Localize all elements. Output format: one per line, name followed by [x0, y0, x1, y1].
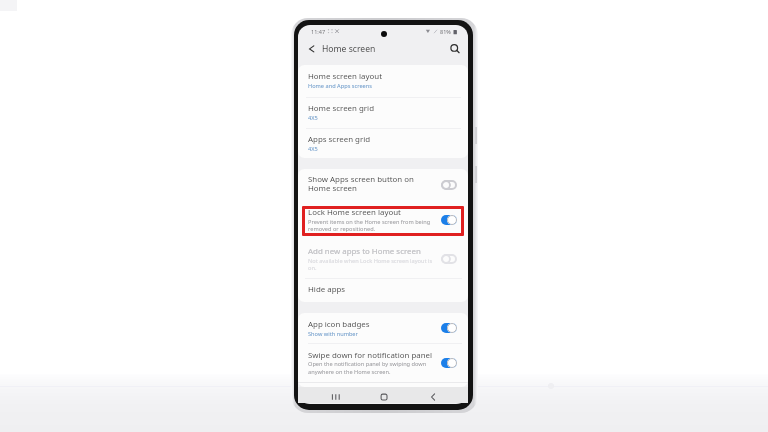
- button[interactable]: Lock Home screen layout: [298, 200, 468, 241]
- staticText: 11:47: [311, 28, 326, 35]
- button[interactable]: Home screen grid: [298, 97, 468, 128]
- staticText: 4X5: [308, 114, 318, 122]
- staticText: Swipe down for notification panel: [308, 350, 433, 361]
- staticText: Lock Home screen layout: [308, 207, 401, 218]
- staticText: Hide apps: [308, 284, 346, 295]
- staticText: Open the notification panel by swiping d…: [308, 360, 427, 375]
- button[interactable]: Navigate up: [305, 42, 319, 56]
- button[interactable]: Home: [376, 389, 392, 405]
- button[interactable]: Show Apps screen button on Home screen: [298, 169, 468, 200]
- staticText: Add new apps to Home screen: [308, 246, 421, 257]
- staticText: Home screen: [322, 43, 376, 55]
- staticText: App icon badges: [308, 319, 370, 330]
- staticText: Apps screen grid: [308, 134, 371, 145]
- staticText: Show with number: [308, 330, 358, 338]
- staticText: 81%: [440, 28, 451, 35]
- button[interactable]: Apps screen grid: [298, 128, 468, 158]
- button[interactable]: Add new apps to Home screen: [298, 241, 468, 278]
- button[interactable]: Swipe down for notification panel: [298, 343, 468, 385]
- button[interactable]: App icon badges: [298, 313, 468, 343]
- button[interactable]: Search: [447, 41, 462, 56]
- staticText: Home screen grid: [308, 103, 374, 114]
- button[interactable]: Hide apps: [298, 278, 468, 302]
- staticText: 4X5: [308, 145, 318, 153]
- staticText: Prevent items on the Home screen from be…: [308, 218, 431, 233]
- staticText: Home and Apps screens: [308, 82, 372, 90]
- staticText: Home screen layout: [308, 71, 382, 82]
- button[interactable]: Home screen layout: [298, 65, 468, 96]
- staticText: Show Apps screen button on Home screen: [308, 174, 414, 194]
- button[interactable]: Back: [425, 389, 441, 405]
- button[interactable]: Recent apps: [328, 389, 344, 405]
- staticText: Not available when Lock Home screen layo…: [308, 257, 433, 272]
